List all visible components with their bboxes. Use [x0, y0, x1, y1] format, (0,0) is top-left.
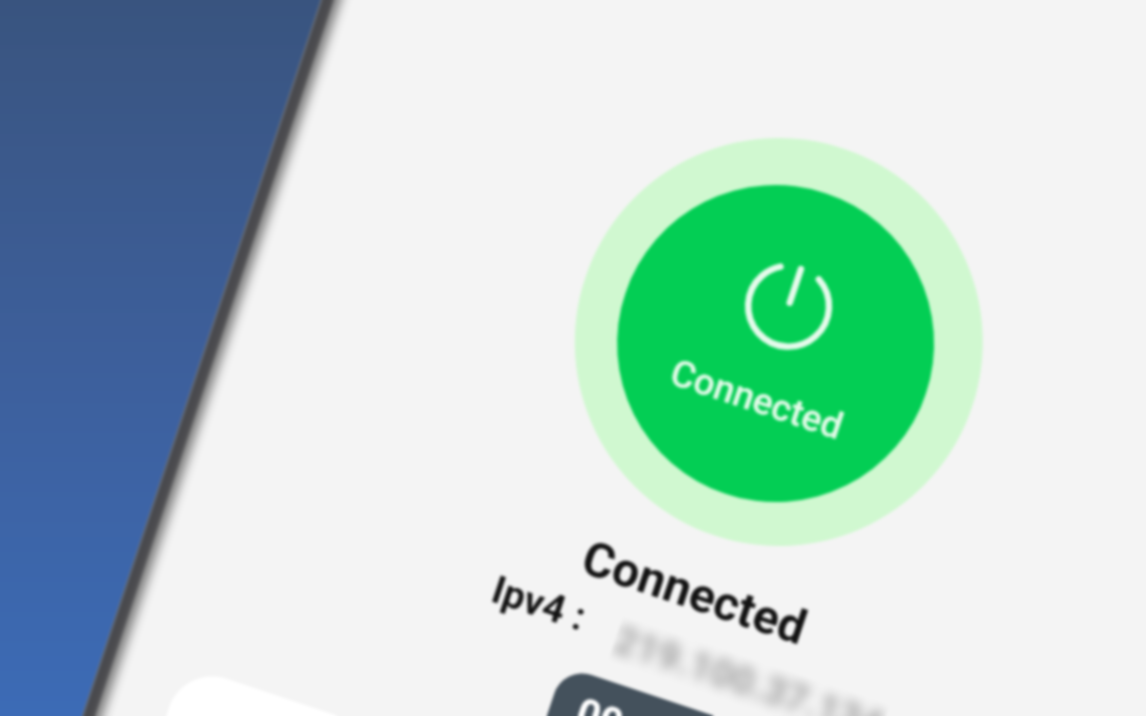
staticText: 219.100.37.134 — [608, 617, 889, 716]
staticText: Connected — [575, 529, 814, 656]
staticText: 00 : 12 : 45 — [570, 688, 775, 716]
staticText: Ipv4 : — [486, 566, 592, 640]
button[interactable]: Disconnect VPN — [521, 84, 1037, 600]
button[interactable]: 00 : 12 : 45 — [528, 665, 835, 716]
staticText: Connected — [665, 351, 849, 448]
button[interactable] — [79, 664, 1037, 716]
